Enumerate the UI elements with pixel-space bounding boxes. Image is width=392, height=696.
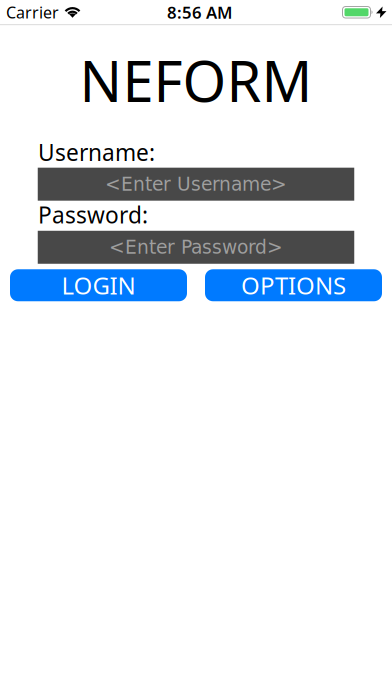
staticText: <Enter Username> — [105, 173, 287, 195]
button[interactable]: <Enter Username> — [38, 168, 354, 201]
button[interactable]: OPTIONS — [205, 269, 382, 301]
button[interactable]: <Enter Password> — [38, 231, 354, 264]
staticText: LOGIN — [61, 269, 135, 301]
staticText: OPTIONS — [241, 269, 346, 301]
staticText: NEFORM — [79, 43, 312, 118]
staticText: <Enter Password> — [109, 236, 283, 258]
staticText: Username: — [38, 137, 155, 167]
staticText: 8:56 AM — [167, 1, 232, 24]
button[interactable]: LOGIN — [10, 269, 187, 301]
staticText: Password: — [38, 200, 148, 230]
staticText: Carrier — [6, 2, 59, 23]
